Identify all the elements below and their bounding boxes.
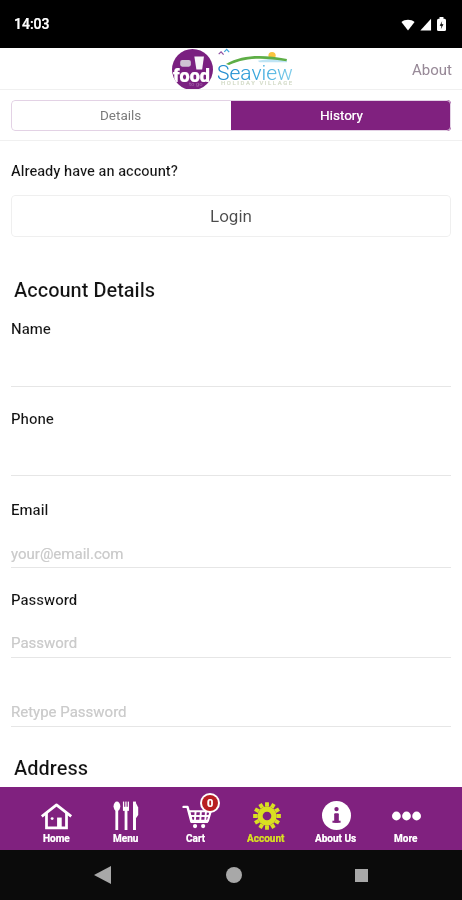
button[interactable]: History [231,100,451,131]
button[interactable]: Menu [91,787,161,850]
button[interactable]: Login [11,195,451,237]
staticText: Details [100,107,142,123]
staticText: your@email.com [11,545,124,563]
other: Account [253,802,281,830]
other: Back [94,866,111,884]
staticText: History [320,107,363,123]
button[interactable]: About Us [301,787,371,850]
staticText: Menu [113,833,139,845]
other: Home [226,867,242,883]
staticText: food [173,65,210,86]
staticText: About Us [315,833,357,845]
staticText: Address [14,756,88,779]
staticText: to go [189,80,203,87]
staticText: Cart [186,833,206,845]
staticText: 0 [207,797,214,810]
staticText: Account Details [14,278,156,301]
staticText: Email [11,501,49,519]
staticText: Retype Password [11,703,127,721]
button[interactable]: Home [21,787,91,850]
other: Cart [183,804,211,828]
button[interactable]: More [371,787,441,850]
other: More [392,811,421,821]
staticText: Login [210,206,252,226]
other: About Us [322,801,351,830]
staticText: Name [11,320,51,338]
other: Menu [113,801,141,830]
button[interactable]: Account [231,787,301,850]
button[interactable]: Details [11,100,231,131]
button[interactable]: Cart [161,787,231,850]
staticText: HOLIDAY VILLAGE [221,79,294,86]
other: Home [42,803,71,829]
staticText: Password [11,591,78,609]
staticText: Account [247,833,285,845]
staticText: Home [43,833,70,845]
button[interactable]: About [406,57,462,83]
staticText: More [394,833,418,845]
staticText: Password [11,634,78,652]
staticText: Seaview [217,61,293,86]
staticText: 14:03 [14,16,50,32]
staticText: Phone [11,410,54,428]
staticText: Already have an account? [11,162,178,179]
